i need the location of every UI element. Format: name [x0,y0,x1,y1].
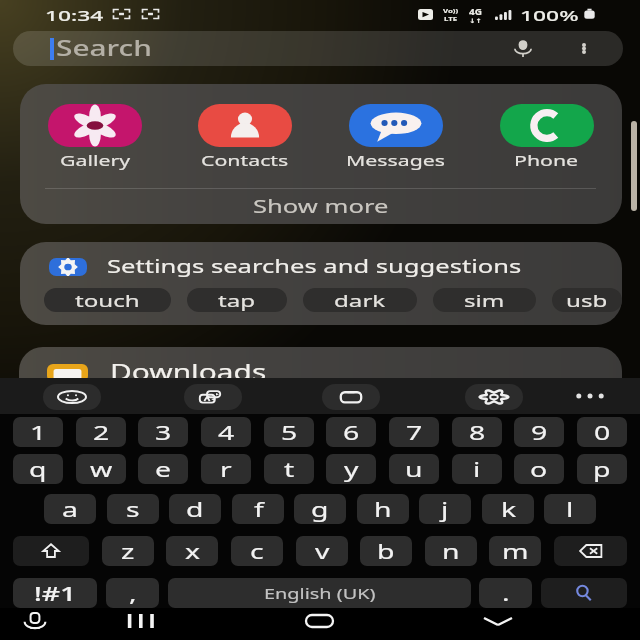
button[interactable]: n [425,536,477,566]
staticText: h [374,496,392,523]
button[interactable]: i [452,454,502,484]
button[interactable]: x [166,536,218,566]
button[interactable]: Search [13,31,623,66]
button[interactable]: 9 [514,417,564,447]
button[interactable]: Voice search [511,39,535,58]
staticText: e [155,456,172,483]
button[interactable]: 1 [13,417,63,447]
button[interactable]: y [326,454,376,484]
button[interactable]: Settings searches and suggestions [49,254,622,279]
button[interactable]: 4 [201,417,251,447]
button[interactable]: 5 [264,417,314,447]
staticText: !#1 [34,580,77,607]
staticText: t [284,456,295,483]
button[interactable]: e [138,454,188,484]
button[interactable]: tap [187,288,287,312]
button[interactable]: Translate [184,384,242,410]
staticText: 100% [520,5,579,25]
button[interactable]: g [294,494,346,524]
staticText: dark [334,289,386,312]
staticText: 10:34 [45,5,104,25]
staticText: k [501,496,517,523]
button[interactable]: 0 [577,417,627,447]
button[interactable]: u [389,454,439,484]
staticText: v [315,538,331,565]
staticText: LTE [444,15,458,23]
button[interactable]: English (UK) [168,578,471,608]
staticText: Search [56,34,153,63]
button[interactable]: d [169,494,221,524]
staticText: touch [75,289,140,312]
button[interactable]: s [107,494,159,524]
button[interactable]: c [231,536,283,566]
staticText: 3 [155,419,172,446]
staticText: Gallery [60,150,131,170]
button[interactable]: z [102,536,154,566]
staticText: j [441,496,449,523]
button[interactable]: o [514,454,564,484]
button[interactable]: Backspace [554,536,627,566]
staticText: b [377,538,395,565]
staticText: English (UK) [264,584,376,603]
button[interactable]: Emoji [43,384,101,410]
button[interactable]: Downloads [19,347,622,417]
button[interactable]: 6 [326,417,376,447]
button[interactable]: m [489,536,541,566]
button[interactable]: 7 [389,417,439,447]
button[interactable]: r [201,454,251,484]
staticText: 7 [406,419,423,446]
button[interactable]: q [13,454,63,484]
button[interactable]: . [479,578,532,608]
button[interactable]: Hide keyboard [482,614,514,628]
button[interactable]: Recents [125,613,155,628]
button[interactable]: , [106,578,159,608]
button[interactable]: w [76,454,126,484]
staticText: Phone [514,150,579,170]
button[interactable]: 2 [76,417,126,447]
button[interactable]: Home [303,613,335,628]
button[interactable]: touch [44,288,171,312]
button[interactable]: p [577,454,627,484]
staticText: Vo)) [443,7,459,15]
staticText: m [502,538,529,565]
staticText: usb [566,289,609,312]
button[interactable]: h [357,494,409,524]
button[interactable]: 8 [452,417,502,447]
button[interactable]: t [264,454,314,484]
button[interactable]: More options [576,41,592,56]
button[interactable]: Messages [320,84,471,170]
staticText: l [566,496,574,523]
staticText: 4G [469,6,483,17]
staticText: q [29,456,47,483]
button[interactable]: l [544,494,596,524]
button[interactable]: 3 [138,417,188,447]
button[interactable]: Contacts [170,84,320,170]
staticText: i [473,456,481,483]
button[interactable]: Keyboard settings [465,384,523,410]
button[interactable]: usb [552,288,622,312]
staticText: 9 [531,419,548,446]
button[interactable]: Shift [13,536,89,566]
button[interactable]: More [566,384,614,408]
staticText: f [254,496,264,523]
button[interactable]: Show more [20,189,622,224]
button[interactable]: b [360,536,412,566]
button[interactable]: j [419,494,471,524]
button[interactable]: Search [541,578,627,608]
button[interactable]: sim [433,288,536,312]
button[interactable]: k [482,494,534,524]
button[interactable]: f [232,494,284,524]
staticText: Downloads [110,358,266,387]
staticText: 8 [469,419,486,446]
staticText: z [121,538,135,565]
button[interactable]: a [44,494,96,524]
button[interactable]: Clipboard [322,384,380,410]
staticText: y [344,456,360,483]
button[interactable]: Voice input [22,612,48,629]
button[interactable]: !#1 [13,578,97,608]
button[interactable]: dark [303,288,417,312]
button[interactable]: Phone [471,84,622,170]
staticText: g [311,496,329,523]
button[interactable]: v [296,536,348,566]
button[interactable]: Gallery [20,84,170,170]
